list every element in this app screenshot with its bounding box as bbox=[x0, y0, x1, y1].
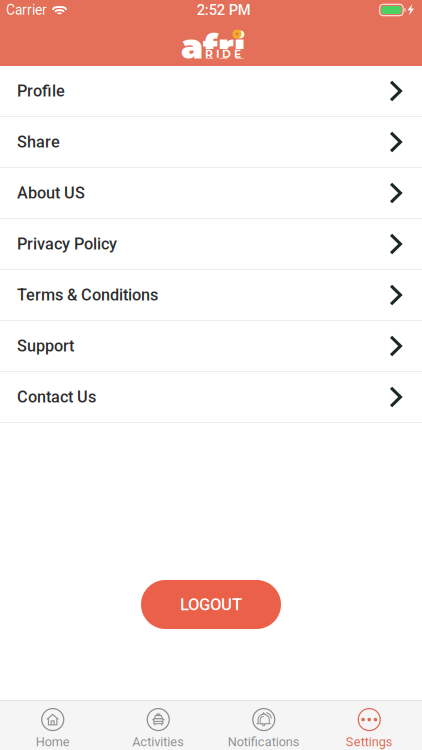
button[interactable]: Settings bbox=[316, 699, 422, 750]
staticText: 2:52 PM bbox=[197, 1, 251, 19]
button[interactable]: Profile bbox=[0, 66, 422, 117]
staticText: Profile bbox=[17, 81, 65, 101]
staticText: About US bbox=[17, 183, 85, 203]
staticText: Carrier bbox=[6, 2, 47, 18]
staticText: Terms & Conditions bbox=[17, 285, 158, 305]
staticText: Share bbox=[17, 132, 60, 152]
staticText: RIDE bbox=[205, 47, 241, 60]
staticText: Settings bbox=[346, 735, 393, 749]
button[interactable]: About US bbox=[0, 168, 422, 219]
button[interactable]: LOGOUT bbox=[141, 580, 281, 629]
button[interactable]: Home bbox=[0, 699, 105, 750]
button[interactable]: Terms & Conditions bbox=[0, 270, 422, 321]
button[interactable]: Activities bbox=[105, 699, 211, 750]
staticText: Contact Us bbox=[17, 387, 96, 407]
staticText: afri bbox=[181, 25, 245, 67]
button[interactable]: Support bbox=[0, 321, 422, 372]
staticText: Notifications bbox=[228, 735, 300, 749]
staticText: Activities bbox=[132, 735, 184, 749]
button[interactable]: Contact Us bbox=[0, 372, 422, 423]
staticText: Privacy Policy bbox=[17, 234, 117, 254]
staticText: LOGOUT bbox=[180, 595, 242, 614]
button[interactable]: Share bbox=[0, 117, 422, 168]
button[interactable]: Privacy Policy bbox=[0, 219, 422, 270]
staticText: Home bbox=[36, 735, 70, 749]
button[interactable]: Notifications bbox=[211, 699, 316, 750]
staticText: Support bbox=[17, 336, 74, 356]
